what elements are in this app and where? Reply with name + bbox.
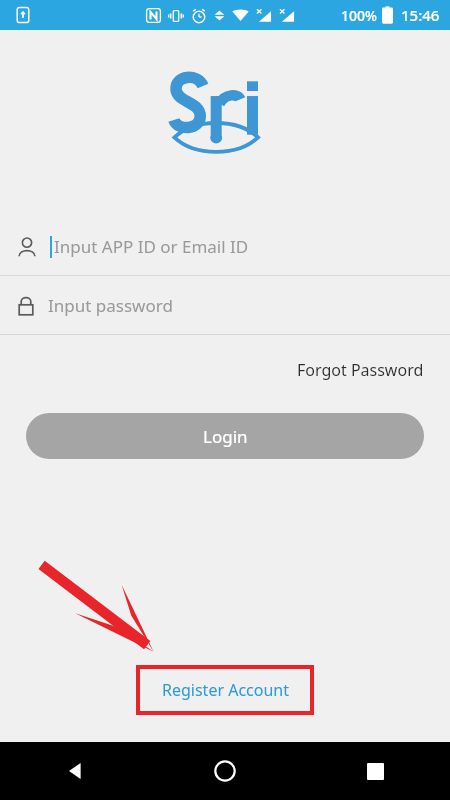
button[interactable]: Back <box>0 742 150 800</box>
staticText: Register Account <box>162 679 289 701</box>
button[interactable]: Forgot Password <box>293 353 428 387</box>
staticText: Login <box>203 425 248 448</box>
staticText: Forgot Password <box>297 359 424 381</box>
button[interactable]: User <box>0 218 450 275</box>
button[interactable]: Home <box>150 742 300 800</box>
staticText: 100% <box>341 6 377 25</box>
staticText: Input password <box>48 294 173 317</box>
staticText: Input APP ID or Email ID <box>54 235 249 258</box>
other: User <box>16 236 38 258</box>
staticText: 15:46 <box>401 5 440 25</box>
button[interactable]: Password <box>0 277 450 334</box>
button[interactable]: Register Account <box>136 665 314 715</box>
button[interactable]: Login <box>26 413 424 459</box>
other: Password <box>16 296 36 316</box>
button[interactable]: Recent apps <box>300 742 450 800</box>
